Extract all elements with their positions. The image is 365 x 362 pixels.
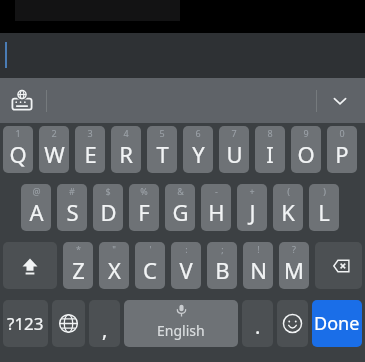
staticText: M [284,255,304,285]
staticText: ) [323,185,326,197]
staticText: % [140,185,148,197]
staticText: L [318,197,330,227]
staticText: H [208,197,225,227]
button[interactable]: 8 [255,126,285,173]
staticText: V [179,255,193,285]
staticText: 1 [15,127,21,139]
button[interactable]: @ [21,184,51,231]
staticText: 0 [339,127,345,139]
button[interactable]: 7 [219,126,249,173]
staticText: # [69,185,75,197]
staticText: Done [314,311,360,336]
button[interactable]: % [129,184,159,231]
staticText: X [108,255,121,285]
button[interactable]: + [237,184,267,231]
staticText: F [138,197,150,227]
staticText: 5 [159,127,165,139]
button[interactable]: * [63,242,93,289]
staticText: Z [72,255,85,285]
staticText: . [255,313,261,340]
staticText: A [29,197,44,227]
button[interactable]: & [165,184,195,231]
staticText: D [100,197,117,227]
staticText: ( [287,185,290,197]
staticText: ' [149,243,152,255]
button[interactable]: Expand toolbar [325,86,355,116]
staticText: 2 [51,127,57,139]
button[interactable]: Done [312,300,362,347]
staticText: @ [32,185,41,197]
button[interactable]: Emoji [277,300,308,347]
staticText: 6 [195,127,201,139]
staticText: O [297,139,315,169]
button[interactable]: . [242,300,273,347]
staticText: 8 [267,127,273,139]
staticText: " [112,243,116,255]
staticText: ? [292,243,296,255]
staticText: R [119,139,133,169]
staticText: W [44,139,65,169]
staticText: : [185,243,188,255]
staticText: 7 [231,127,237,139]
staticText: 4 [123,127,129,139]
button[interactable]: ( [273,184,303,231]
staticText: N [250,255,267,285]
button[interactable]: 4 [111,126,141,173]
staticText: English [157,321,205,340]
staticText: I [266,139,274,169]
button[interactable]: ) [309,184,339,231]
button[interactable]: $ [93,184,123,231]
staticText: J [249,197,256,227]
button[interactable]: " [99,242,129,289]
staticText: ; [221,243,224,255]
staticText: + [249,185,255,197]
button[interactable]: Shift [3,242,57,289]
staticText: 9 [303,127,309,139]
button[interactable]: ' [135,242,165,289]
staticText: - [215,185,218,197]
staticText: K [281,197,295,227]
button[interactable]: 9 [291,126,321,173]
button[interactable]: 2 [39,126,69,173]
button[interactable]: - [201,184,231,231]
button[interactable]: ; [207,242,237,289]
button[interactable]: 0 [327,126,357,173]
staticText: Q [9,139,27,169]
button[interactable]: ?123 [3,300,48,347]
button[interactable]: 6 [183,126,213,173]
button[interactable]: English [124,300,238,347]
staticText: G [172,197,189,227]
staticText: P [335,139,349,169]
staticText: ?123 [7,312,44,335]
staticText: $ [105,185,111,197]
staticText: C [143,255,157,285]
staticText: , [102,316,108,343]
staticText: E [84,139,97,169]
button[interactable]: # [57,184,87,231]
button[interactable]: 1 [3,126,33,173]
staticText: ! [257,243,260,255]
button[interactable]: Change keyboard language [7,86,37,116]
button[interactable]: 5 [147,126,177,173]
staticText: S [66,197,79,227]
staticText: Y [192,139,205,169]
button[interactable]: Backspace [315,242,362,289]
button[interactable]: : [171,242,201,289]
button[interactable]: , [89,300,120,347]
button[interactable]: ! [243,242,273,289]
staticText: * [76,243,81,255]
staticText: 3 [87,127,93,139]
staticText: U [226,139,243,169]
staticText: & [177,185,184,197]
button[interactable]: ? [279,242,309,289]
staticText: B [215,255,230,285]
staticText: T [156,139,169,169]
button[interactable]: 3 [75,126,105,173]
button[interactable]: Change language [52,300,85,347]
